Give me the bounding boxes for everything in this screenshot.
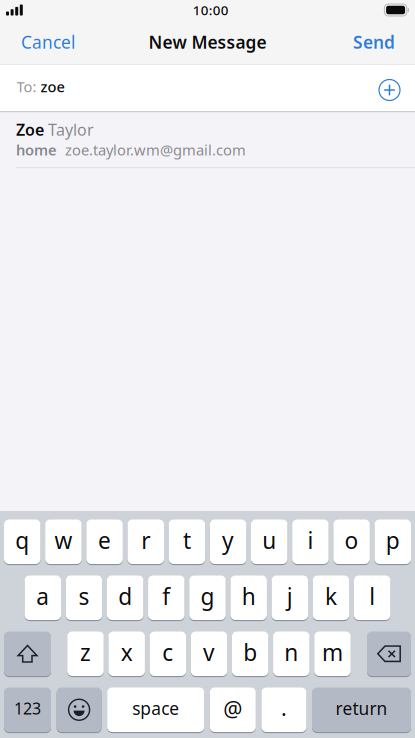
staticText: New Message xyxy=(148,30,266,53)
staticText: m xyxy=(322,637,343,667)
staticText: r xyxy=(141,525,150,555)
staticText: Taylor xyxy=(44,119,94,140)
button[interactable]: e xyxy=(86,519,123,564)
button[interactable]: x xyxy=(108,631,145,676)
staticText: l xyxy=(369,581,375,611)
staticText: d xyxy=(118,581,132,611)
staticText: 123 xyxy=(14,698,41,719)
staticText: v xyxy=(203,637,215,667)
button[interactable]: d xyxy=(107,575,143,620)
button[interactable]: n xyxy=(273,631,310,676)
button[interactable]: w xyxy=(45,519,82,564)
staticText: x xyxy=(121,637,133,667)
staticText: c xyxy=(162,637,173,667)
staticText: f xyxy=(162,581,170,611)
staticText: i xyxy=(307,525,313,555)
button[interactable]: v xyxy=(191,631,227,676)
button[interactable]: j xyxy=(272,575,308,620)
button[interactable]: Add contact xyxy=(377,78,401,102)
staticText: t xyxy=(183,525,191,555)
staticText: k xyxy=(325,581,337,611)
staticText: To: xyxy=(16,77,36,96)
button[interactable]: g xyxy=(189,575,226,620)
staticText: z xyxy=(80,637,91,667)
staticText: . xyxy=(281,694,287,722)
button[interactable]: h xyxy=(230,575,267,620)
button[interactable]: Send xyxy=(333,20,415,64)
button[interactable]: . xyxy=(261,687,306,732)
staticText: 10:00 xyxy=(193,1,229,19)
staticText: o xyxy=(345,525,359,555)
staticText: w xyxy=(54,525,72,555)
button[interactable]: l xyxy=(354,575,390,620)
staticText: Send xyxy=(353,30,395,53)
button[interactable]: q xyxy=(4,519,40,564)
staticText: u xyxy=(262,525,276,555)
staticText: Zoe xyxy=(16,119,44,140)
staticText: q xyxy=(15,525,29,555)
staticText: e xyxy=(98,525,111,555)
staticText: space xyxy=(132,697,179,720)
staticText: Cancel xyxy=(21,30,75,53)
staticText: g xyxy=(200,581,214,611)
button[interactable]: r xyxy=(127,519,164,564)
button[interactable]: Shift xyxy=(4,631,51,676)
button[interactable]: i xyxy=(292,519,329,564)
staticText: return xyxy=(335,697,387,720)
button[interactable]: y xyxy=(210,519,246,564)
staticText: p xyxy=(386,525,400,555)
staticText: zoe.taylor.wm@gmail.com xyxy=(57,140,246,160)
button[interactable]: return xyxy=(312,687,411,732)
button[interactable]: s xyxy=(66,575,102,620)
button[interactable]: m xyxy=(314,631,351,676)
staticText: j xyxy=(287,581,293,611)
button[interactable]: a xyxy=(25,575,61,620)
button[interactable]: f xyxy=(148,575,185,620)
staticText: b xyxy=(243,637,257,667)
button[interactable]: Emoji xyxy=(57,687,102,732)
button[interactable]: Cancel xyxy=(0,20,96,64)
button[interactable]: @ xyxy=(210,687,256,732)
button[interactable]: t xyxy=(169,519,205,564)
staticText: @ xyxy=(223,695,242,723)
staticText: y xyxy=(222,525,234,555)
staticText: zoe xyxy=(36,77,64,96)
button[interactable]: 123 xyxy=(4,687,51,732)
button[interactable]: k xyxy=(313,575,349,620)
button[interactable]: z xyxy=(67,631,104,676)
staticText: h xyxy=(242,581,256,611)
staticText: a xyxy=(36,581,49,611)
button[interactable]: u xyxy=(251,519,287,564)
staticText: n xyxy=(284,637,298,667)
button[interactable]: b xyxy=(232,631,268,676)
button[interactable]: p xyxy=(374,519,411,564)
button[interactable]: c xyxy=(150,631,186,676)
button[interactable]: space xyxy=(107,687,204,732)
staticText: home xyxy=(16,140,57,160)
button[interactable]: Delete xyxy=(367,631,411,676)
button[interactable]: Zoe xyxy=(0,112,415,167)
staticText: s xyxy=(78,581,89,611)
button[interactable]: o xyxy=(333,519,370,564)
